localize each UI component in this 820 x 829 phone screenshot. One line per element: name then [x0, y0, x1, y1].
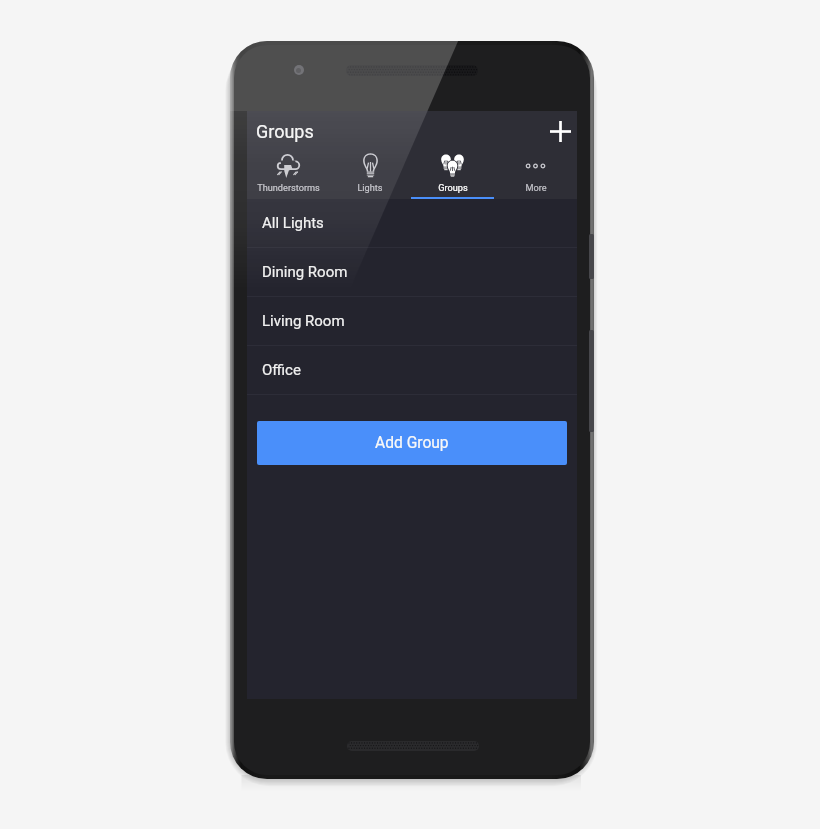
- staticText: Groups: [256, 121, 314, 142]
- staticText: Office: [262, 361, 301, 379]
- staticText: Lights: [357, 182, 383, 193]
- button[interactable]: Living Room: [247, 297, 577, 345]
- staticText: Groups: [438, 182, 468, 193]
- button[interactable]: Dining Room: [247, 248, 577, 296]
- staticText: Living Room: [262, 312, 345, 330]
- staticText: All Lights: [262, 214, 324, 232]
- button[interactable]: More: [494, 148, 577, 199]
- button[interactable]: Office: [247, 346, 577, 394]
- button[interactable]: All Lights: [247, 199, 577, 247]
- button[interactable]: Groups: [411, 148, 494, 199]
- staticText: Add Group: [375, 434, 449, 452]
- button[interactable]: Add group: [545, 116, 576, 147]
- button[interactable]: Lights: [329, 148, 411, 199]
- staticText: Dining Room: [262, 263, 348, 281]
- staticText: Thunderstorms: [257, 182, 320, 193]
- button[interactable]: Thunderstorms: [247, 148, 329, 199]
- button[interactable]: Add Group: [257, 421, 567, 465]
- staticText: More: [525, 182, 547, 193]
